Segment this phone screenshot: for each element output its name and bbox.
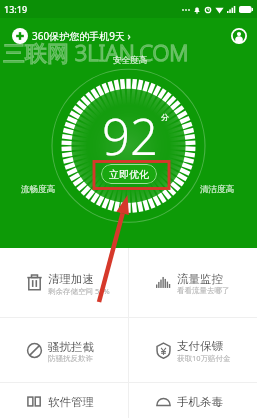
button[interactable]: 软件管理 — [0, 369, 128, 418]
button[interactable]: 流量监控 — [129, 248, 257, 317]
staticText: 360保护您的手机9天 › — [32, 29, 131, 43]
staticText: 获取10万赔付金 — [177, 353, 231, 363]
button[interactable]: 骚扰拦截 — [0, 318, 128, 382]
staticText: 清洁度高 — [200, 184, 234, 195]
button[interactable]: 360保护您的手机9天 › — [0, 25, 137, 47]
button[interactable]: 支付保镖 — [129, 318, 257, 382]
button[interactable]: 清理加速 — [0, 248, 128, 317]
staticText: 流量监控 — [177, 272, 223, 286]
staticText: 92 — [102, 103, 158, 170]
staticText: 安全度高 — [113, 55, 147, 66]
button[interactable]: 立即优化 — [101, 164, 157, 184]
staticText: 防骚扰反欺诈 — [48, 354, 93, 363]
button[interactable]: Account — [231, 28, 247, 44]
staticText: 三联网 3LIAN.COM — [3, 37, 189, 67]
staticText: 骚扰拦截 — [48, 340, 94, 354]
staticText: 看看流量去哪了 — [177, 286, 230, 295]
staticText: 剩余存储空间 55% — [48, 286, 110, 296]
staticText: 软件管理 — [48, 395, 94, 409]
staticText: 清理加速 — [48, 272, 94, 286]
staticText: 13:19 — [4, 3, 28, 15]
staticText: 手机杀毒 — [177, 395, 223, 409]
staticText: 立即优化 — [109, 168, 149, 181]
staticText: 支付保镖 — [177, 339, 223, 353]
button[interactable]: 手机杀毒 — [129, 369, 257, 418]
staticText: 流畅度高 — [21, 184, 55, 195]
staticText: 分 — [161, 112, 169, 122]
